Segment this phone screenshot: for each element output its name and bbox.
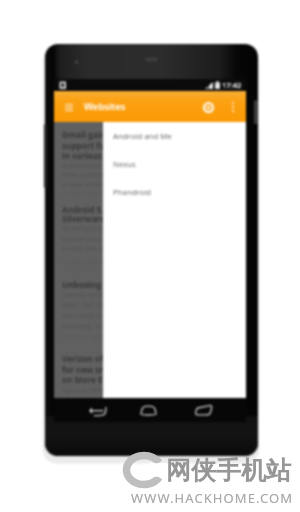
button[interactable]: Recent apps xyxy=(190,401,216,419)
button[interactable]: Android and Me xyxy=(103,122,246,150)
button[interactable]: Phandroid xyxy=(103,178,246,206)
staticText: 31 minutes ago xyxy=(62,257,112,266)
staticText: 网侠手机站 xyxy=(166,455,291,486)
staticText: Android 5.1 Lo xyxy=(62,204,121,215)
staticText: floating it placed xyxy=(62,223,122,233)
staticText: install the very xyxy=(62,243,115,253)
staticText: for new smart xyxy=(62,364,120,375)
staticText: a new sharing xyxy=(62,179,113,189)
staticText: tablets and ph xyxy=(62,289,114,299)
staticText: 21 minutes ago xyxy=(62,189,112,198)
staticText: in various new xyxy=(62,150,122,161)
staticText: a balanced view xyxy=(62,160,119,170)
staticText: support for Go xyxy=(62,140,122,151)
staticText: are really a m xyxy=(62,310,111,320)
staticText: Silverware aler xyxy=(62,213,123,224)
button[interactable]: Home xyxy=(135,401,161,419)
staticText: days, but they xyxy=(62,299,112,309)
staticText: WWW.HACKHOME.COM xyxy=(131,489,294,507)
staticText: Websites xyxy=(84,100,126,113)
staticText: Unboxing the N xyxy=(62,279,126,290)
button[interactable]: Nexus xyxy=(103,150,246,178)
staticText: Gmail gains ne xyxy=(62,129,123,140)
staticText: on More Every xyxy=(62,374,121,385)
staticText: Verizon offers xyxy=(62,353,119,364)
staticText: Special Offer xyxy=(62,385,108,395)
staticText: Android and Me xyxy=(113,131,172,142)
staticText: Phandroid xyxy=(113,187,152,198)
button[interactable]: Back xyxy=(85,402,111,420)
button[interactable]: Add website xyxy=(197,96,219,118)
staticText: convenient and xyxy=(62,234,118,244)
button[interactable]: Open navigation drawer xyxy=(60,98,78,116)
staticText: 17:42 xyxy=(222,80,242,90)
button[interactable]: More options xyxy=(224,98,242,116)
staticText: Nexus xyxy=(113,159,136,170)
staticText: new update is ro xyxy=(62,169,122,179)
staticText: monthly bill w xyxy=(62,321,115,331)
